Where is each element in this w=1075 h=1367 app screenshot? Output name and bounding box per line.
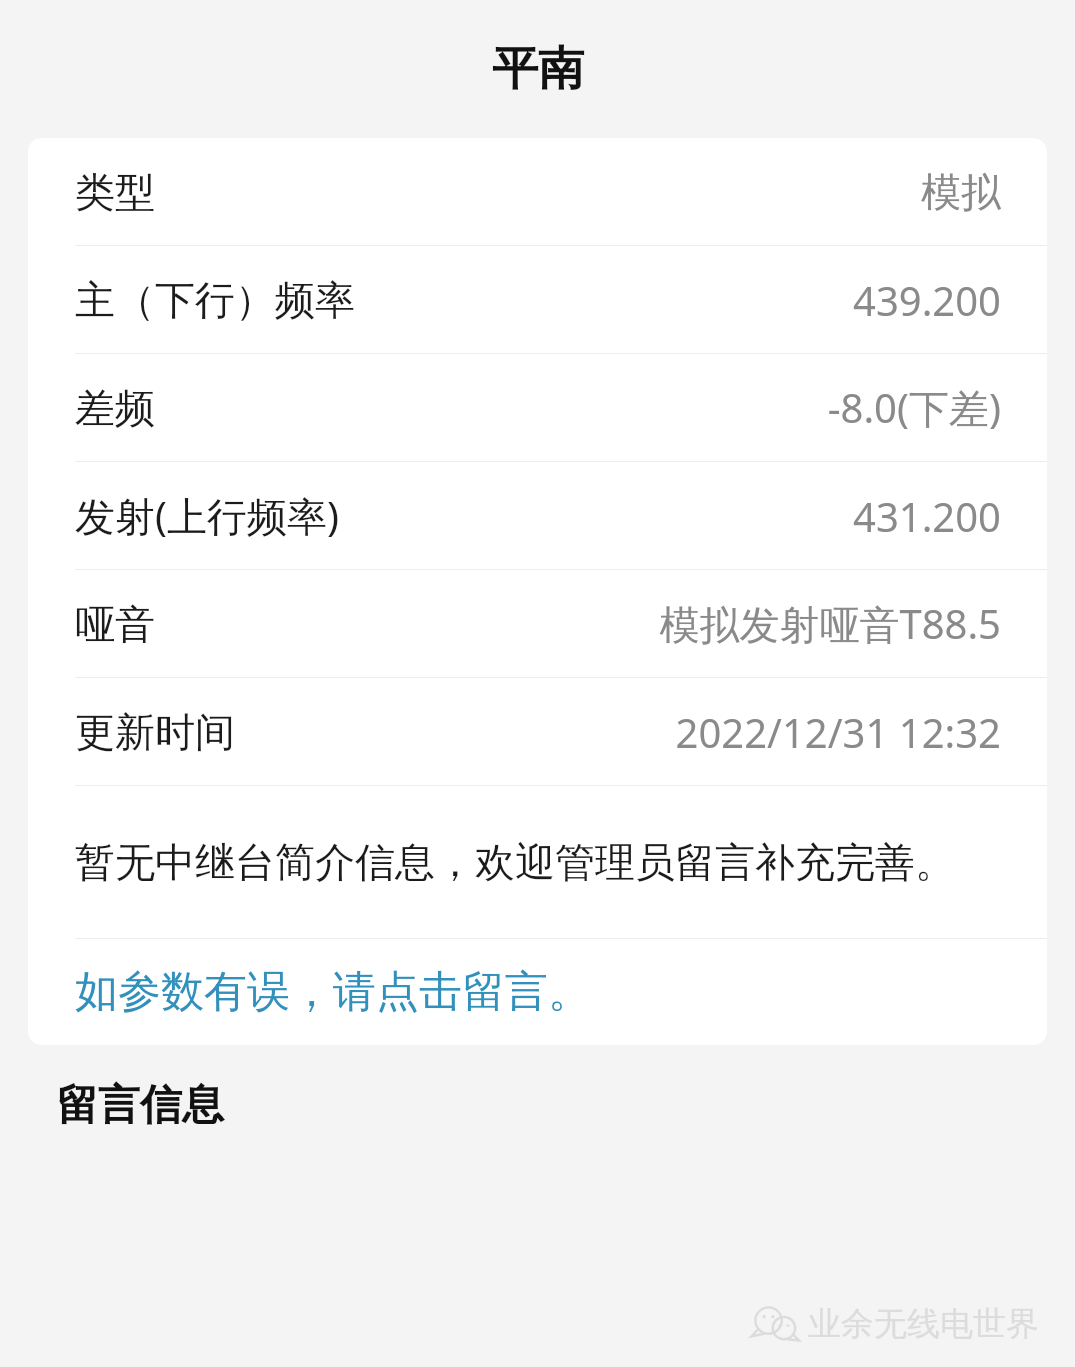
staticText: 如参数有误，请点击留言。 — [75, 965, 591, 1019]
staticText: 439.200 — [853, 273, 1001, 327]
button[interactable]: 哑音 — [28, 570, 1047, 677]
staticText: 模拟 — [921, 167, 1001, 217]
button[interactable]: 主（下行）频率 — [28, 246, 1047, 353]
staticText: 留言信息 — [56, 1079, 224, 1132]
staticText: 2022/12/31 12:32 — [675, 705, 1001, 759]
staticText: 431.200 — [853, 489, 1001, 543]
staticText: 主（下行）频率 — [75, 275, 355, 325]
staticText: -8.0(下差) — [827, 380, 1001, 435]
button[interactable]: 如参数有误，请点击留言。 — [28, 939, 1047, 1045]
staticText: 业余无线电世界 — [808, 1303, 1039, 1345]
staticText: 更新时间 — [75, 707, 235, 757]
staticText: 类型 — [75, 167, 155, 217]
other: 业余无线电世界 公众号 — [754, 1303, 1039, 1345]
staticText: 平南 — [492, 40, 584, 98]
staticText: 暂无中继台简介信息，欢迎管理员留言补充完善。 — [75, 837, 955, 887]
staticText: 差频 — [75, 383, 155, 433]
button[interactable]: 发射(上行频率) — [28, 462, 1047, 569]
button[interactable]: 差频 — [28, 354, 1047, 461]
button[interactable]: 更新时间 — [28, 678, 1047, 785]
staticText: 哑音 — [75, 599, 155, 649]
button[interactable]: 类型 — [28, 138, 1047, 245]
staticText: 发射(上行频率) — [75, 488, 339, 543]
staticText: 模拟发射哑音T88.5 — [659, 596, 1001, 651]
